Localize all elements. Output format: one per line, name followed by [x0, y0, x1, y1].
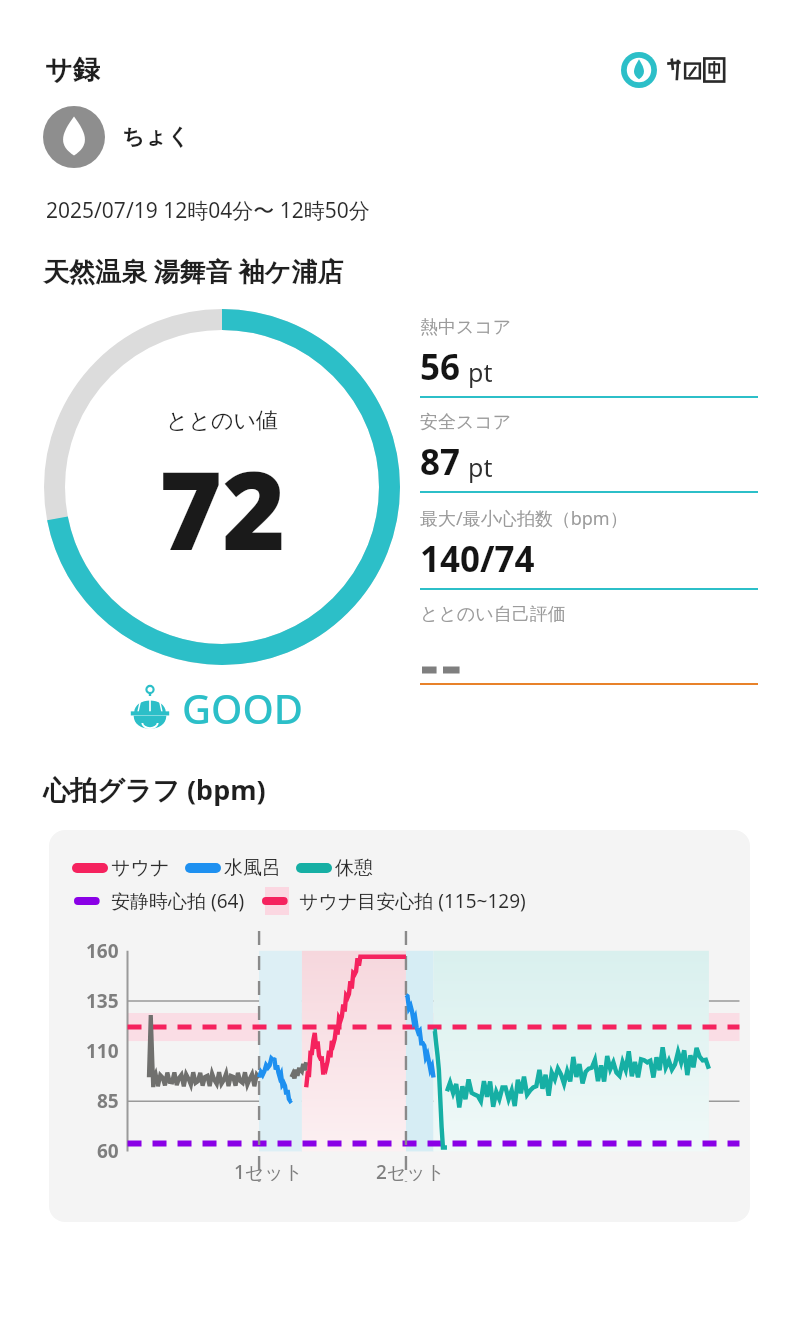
staticText: サ録	[45, 53, 100, 87]
staticText: サウナ	[111, 856, 170, 880]
staticText: 56	[420, 343, 461, 391]
button[interactable]: ちょく	[43, 106, 800, 168]
staticText: 最大/最小心拍数（bpm）	[420, 506, 628, 531]
staticText: 天然温泉 湯舞音 袖ケ浦店	[43, 253, 344, 289]
staticText: 水風呂	[224, 856, 281, 880]
staticText: 60	[97, 1138, 119, 1164]
staticText: 140/74	[420, 535, 535, 583]
staticText: 休憩	[335, 856, 373, 880]
button[interactable]: 最大/最小心拍数（bpm）	[420, 493, 758, 590]
staticText: 2025/07/19 12時04分〜 12時50分	[46, 196, 370, 225]
staticText: 72	[159, 435, 286, 582]
staticText: 160	[86, 938, 119, 964]
button[interactable]: GOOD	[126, 681, 304, 735]
staticText: 安静時心拍 (64)	[111, 888, 245, 914]
staticText: ととのい自己評価	[420, 603, 566, 626]
staticText: 心拍グラフ (bpm)	[43, 771, 266, 808]
staticText: 安全スコア	[420, 411, 512, 434]
staticText: 85	[97, 1088, 119, 1114]
staticText: pt	[468, 355, 493, 389]
staticText: ととのい値	[166, 407, 279, 435]
staticText: サウナ目安心拍 (115~129)	[299, 888, 526, 914]
button[interactable]: サの国	[621, 52, 758, 88]
button[interactable]: ととのい自己評価	[420, 590, 758, 685]
button[interactable]: 安全スコア	[420, 398, 758, 493]
staticText: 熱中スコア	[420, 316, 512, 339]
staticText: 2セット	[376, 1159, 446, 1185]
staticText: ちょく	[122, 123, 190, 151]
staticText: 87	[420, 438, 461, 486]
button[interactable]: 熱中スコア	[420, 303, 758, 398]
staticText: 110	[86, 1038, 119, 1064]
staticText: 135	[86, 988, 119, 1014]
staticText: GOOD	[182, 681, 304, 735]
staticText: pt	[468, 450, 493, 484]
staticText: 1セット	[234, 1159, 304, 1185]
